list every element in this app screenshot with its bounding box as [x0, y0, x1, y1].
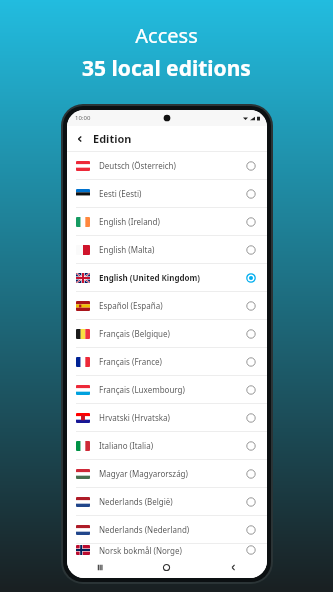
button[interactable]: Nederlands (België) — [67, 488, 267, 515]
staticText: Français (Luxembourg) — [99, 384, 238, 395]
staticText: English (United Kingdom) — [99, 272, 238, 283]
staticText: Eesti (Eesti) — [99, 188, 238, 199]
staticText: 35 local editions — [82, 54, 251, 83]
staticText: Hrvatski (Hrvatska) — [99, 412, 238, 423]
button[interactable]: Hrvatski (Hrvatska) — [67, 404, 267, 431]
staticText: Français (France) — [99, 356, 238, 367]
staticText: Magyar (Magyarország) — [99, 468, 238, 479]
button[interactable]: Magyar (Magyarország) — [67, 460, 267, 487]
button[interactable]: Nederlands (Nederland) — [67, 516, 267, 543]
button[interactable]: Home — [133, 556, 200, 578]
staticText: Français (Belgique) — [99, 328, 238, 339]
button[interactable]: Español (España) — [67, 292, 267, 319]
button[interactable]: Deutsch (Österreich) — [67, 152, 267, 179]
staticText: Edition — [93, 131, 132, 146]
button[interactable]: Français (Belgique) — [67, 320, 267, 347]
staticText: Deutsch (Österreich) — [99, 160, 238, 171]
staticText: English (Malta) — [99, 244, 238, 255]
staticText: Norsk bokmål (Norge) — [99, 545, 238, 556]
staticText: Nederlands (België) — [99, 496, 238, 507]
button[interactable]: Back — [200, 556, 267, 578]
button[interactable]: Recents — [67, 556, 133, 578]
button[interactable]: Français (France) — [67, 348, 267, 375]
button[interactable]: Norsk bokmål (Norge) — [67, 544, 267, 556]
button[interactable]: Italiano (Italia) — [67, 432, 267, 459]
button[interactable]: English (United Kingdom) — [67, 264, 267, 291]
staticText: Nederlands (Nederland) — [99, 524, 238, 535]
staticText: Español (España) — [99, 300, 238, 311]
staticText: English (Ireland) — [99, 216, 238, 227]
staticText: Access — [135, 22, 198, 49]
staticText: Italiano (Italia) — [99, 440, 238, 451]
button[interactable]: Français (Luxembourg) — [67, 376, 267, 403]
button[interactable]: Back — [67, 126, 93, 151]
staticText: 10:00 — [75, 114, 91, 122]
button[interactable]: Eesti (Eesti) — [67, 180, 267, 207]
button[interactable]: English (Malta) — [67, 236, 267, 263]
button[interactable]: English (Ireland) — [67, 208, 267, 235]
